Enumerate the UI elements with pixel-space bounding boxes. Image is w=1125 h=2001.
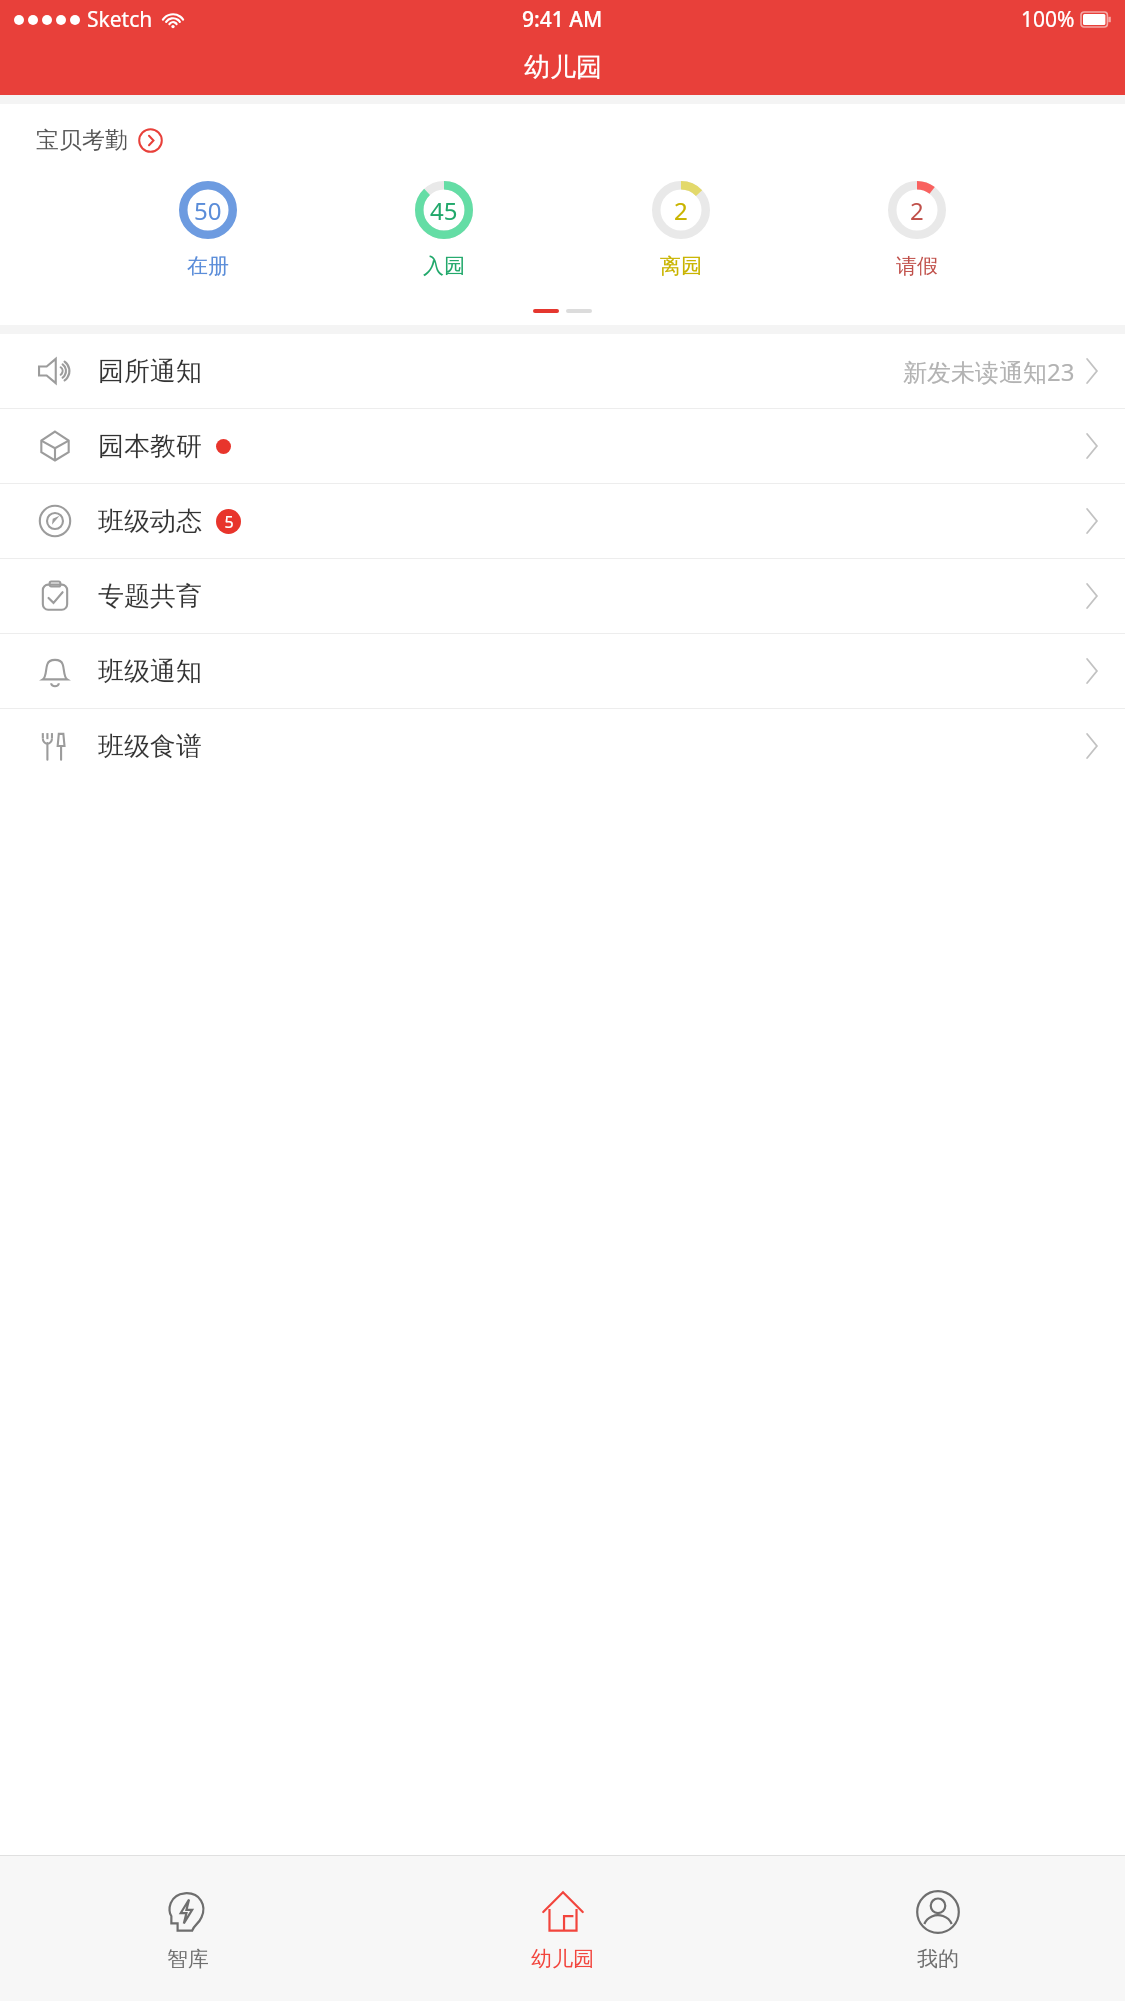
button[interactable]: 2 — [652, 181, 710, 279]
staticText: 请假 — [896, 253, 938, 279]
button[interactable]: 50 — [179, 181, 237, 279]
staticText: 我的 — [917, 1946, 959, 1972]
staticText: 专题共育 — [98, 580, 202, 613]
button[interactable]: 宝贝考勤 — [36, 126, 163, 155]
staticText: 入园 — [423, 253, 465, 279]
staticText: 离园 — [660, 253, 702, 279]
staticText: 智库 — [167, 1946, 209, 1972]
staticText: 2 — [910, 194, 924, 227]
staticText: 园本教研 — [98, 430, 202, 463]
staticText: Sketch — [87, 5, 153, 34]
button[interactable]: 园所通知 — [0, 334, 1125, 408]
button[interactable]: 我的 — [750, 1856, 1125, 2001]
button[interactable]: 2 — [888, 181, 946, 279]
button[interactable]: 班级通知 — [0, 634, 1125, 708]
staticText: 幼儿园 — [531, 1946, 594, 1972]
button[interactable]: 专题共育 — [0, 559, 1125, 633]
staticText: 园所通知 — [98, 355, 202, 388]
button[interactable]: 智库 — [0, 1856, 375, 2001]
staticText: 50 — [194, 194, 222, 227]
button[interactable]: 45 — [415, 181, 473, 279]
staticText: 2 — [674, 194, 688, 227]
button[interactable]: 幼儿园 — [375, 1856, 750, 2001]
staticText: 班级食谱 — [98, 730, 202, 763]
staticText: 100% — [1021, 5, 1075, 34]
staticText: 在册 — [187, 253, 229, 279]
staticText: 班级通知 — [98, 655, 202, 688]
staticText: 5 — [224, 511, 234, 533]
staticText: 班级动态 — [98, 505, 202, 538]
button[interactable]: 班级食谱 — [0, 709, 1125, 783]
staticText: 新发未读通知23 — [903, 355, 1075, 388]
staticText: 幼儿园 — [524, 51, 602, 84]
staticText: 45 — [430, 194, 458, 227]
button[interactable]: 园本教研 — [0, 409, 1125, 483]
staticText: 9:41 AM — [522, 5, 603, 34]
button[interactable]: 班级动态 — [0, 484, 1125, 558]
staticText: 宝贝考勤 — [36, 126, 128, 155]
